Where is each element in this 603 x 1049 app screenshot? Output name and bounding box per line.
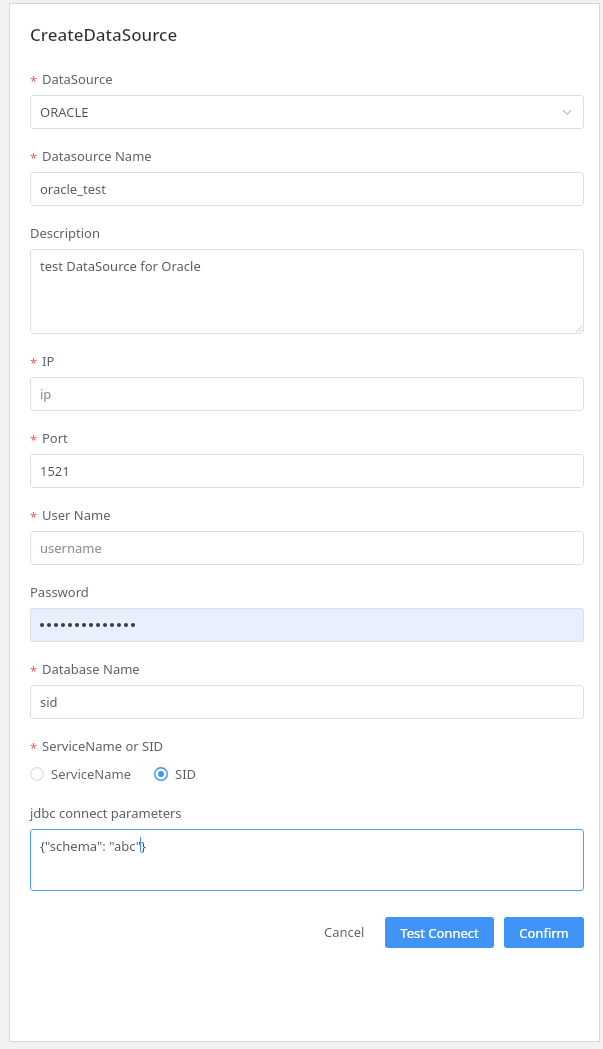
staticText: Datasource Name xyxy=(42,147,152,165)
staticText: IP xyxy=(42,352,55,370)
staticText: CreateDataSource xyxy=(30,23,178,46)
button[interactable]: Cancel xyxy=(312,915,377,949)
staticText: User Name xyxy=(42,506,111,524)
staticText: DataSource xyxy=(42,70,113,88)
staticText: sid xyxy=(40,693,58,711)
staticText: Password xyxy=(30,583,89,601)
staticText: * xyxy=(30,72,38,90)
staticText: * xyxy=(30,739,38,757)
button[interactable]: test DataSource for Oracle xyxy=(30,249,584,334)
button[interactable]: ServiceName xyxy=(30,763,132,785)
staticText: Test Connect xyxy=(400,924,479,942)
staticText: username xyxy=(40,539,102,557)
staticText: * xyxy=(30,508,38,526)
button[interactable]: oracle_test xyxy=(30,172,584,206)
button[interactable]: Confirm xyxy=(504,917,584,948)
staticText: ip xyxy=(40,385,52,403)
staticText: * xyxy=(30,431,38,449)
staticText: Database Name xyxy=(42,660,140,678)
staticText: Port xyxy=(42,429,68,447)
staticText: jdbc connect parameters xyxy=(30,804,182,822)
button[interactable]: ip xyxy=(30,377,584,411)
button[interactable]: username xyxy=(30,531,584,565)
button[interactable]: SID xyxy=(154,763,197,785)
staticText: 1521 xyxy=(40,462,70,480)
staticText: SID xyxy=(175,765,197,783)
staticText: * xyxy=(30,354,38,372)
staticText: test DataSource for Oracle xyxy=(40,257,201,275)
staticText: ServiceName or SID xyxy=(42,737,164,755)
staticText: * xyxy=(30,662,38,680)
button[interactable] xyxy=(30,608,584,642)
staticText: Confirm xyxy=(519,924,569,942)
button[interactable]: ORACLE xyxy=(30,95,584,129)
staticText: * xyxy=(30,149,38,167)
staticText: {"schema": "abc"} xyxy=(40,837,146,855)
staticText: ServiceName xyxy=(51,765,132,783)
staticText: Cancel xyxy=(324,923,365,941)
button[interactable]: 1521 xyxy=(30,454,584,488)
staticText: Description xyxy=(30,224,100,242)
other: Open dropdown xyxy=(560,105,574,119)
button[interactable]: {"schema": "abc"} xyxy=(30,829,584,891)
button[interactable]: sid xyxy=(30,685,584,719)
button[interactable]: Test Connect xyxy=(385,917,494,948)
staticText: ORACLE xyxy=(40,103,89,121)
staticText: oracle_test xyxy=(40,180,106,198)
